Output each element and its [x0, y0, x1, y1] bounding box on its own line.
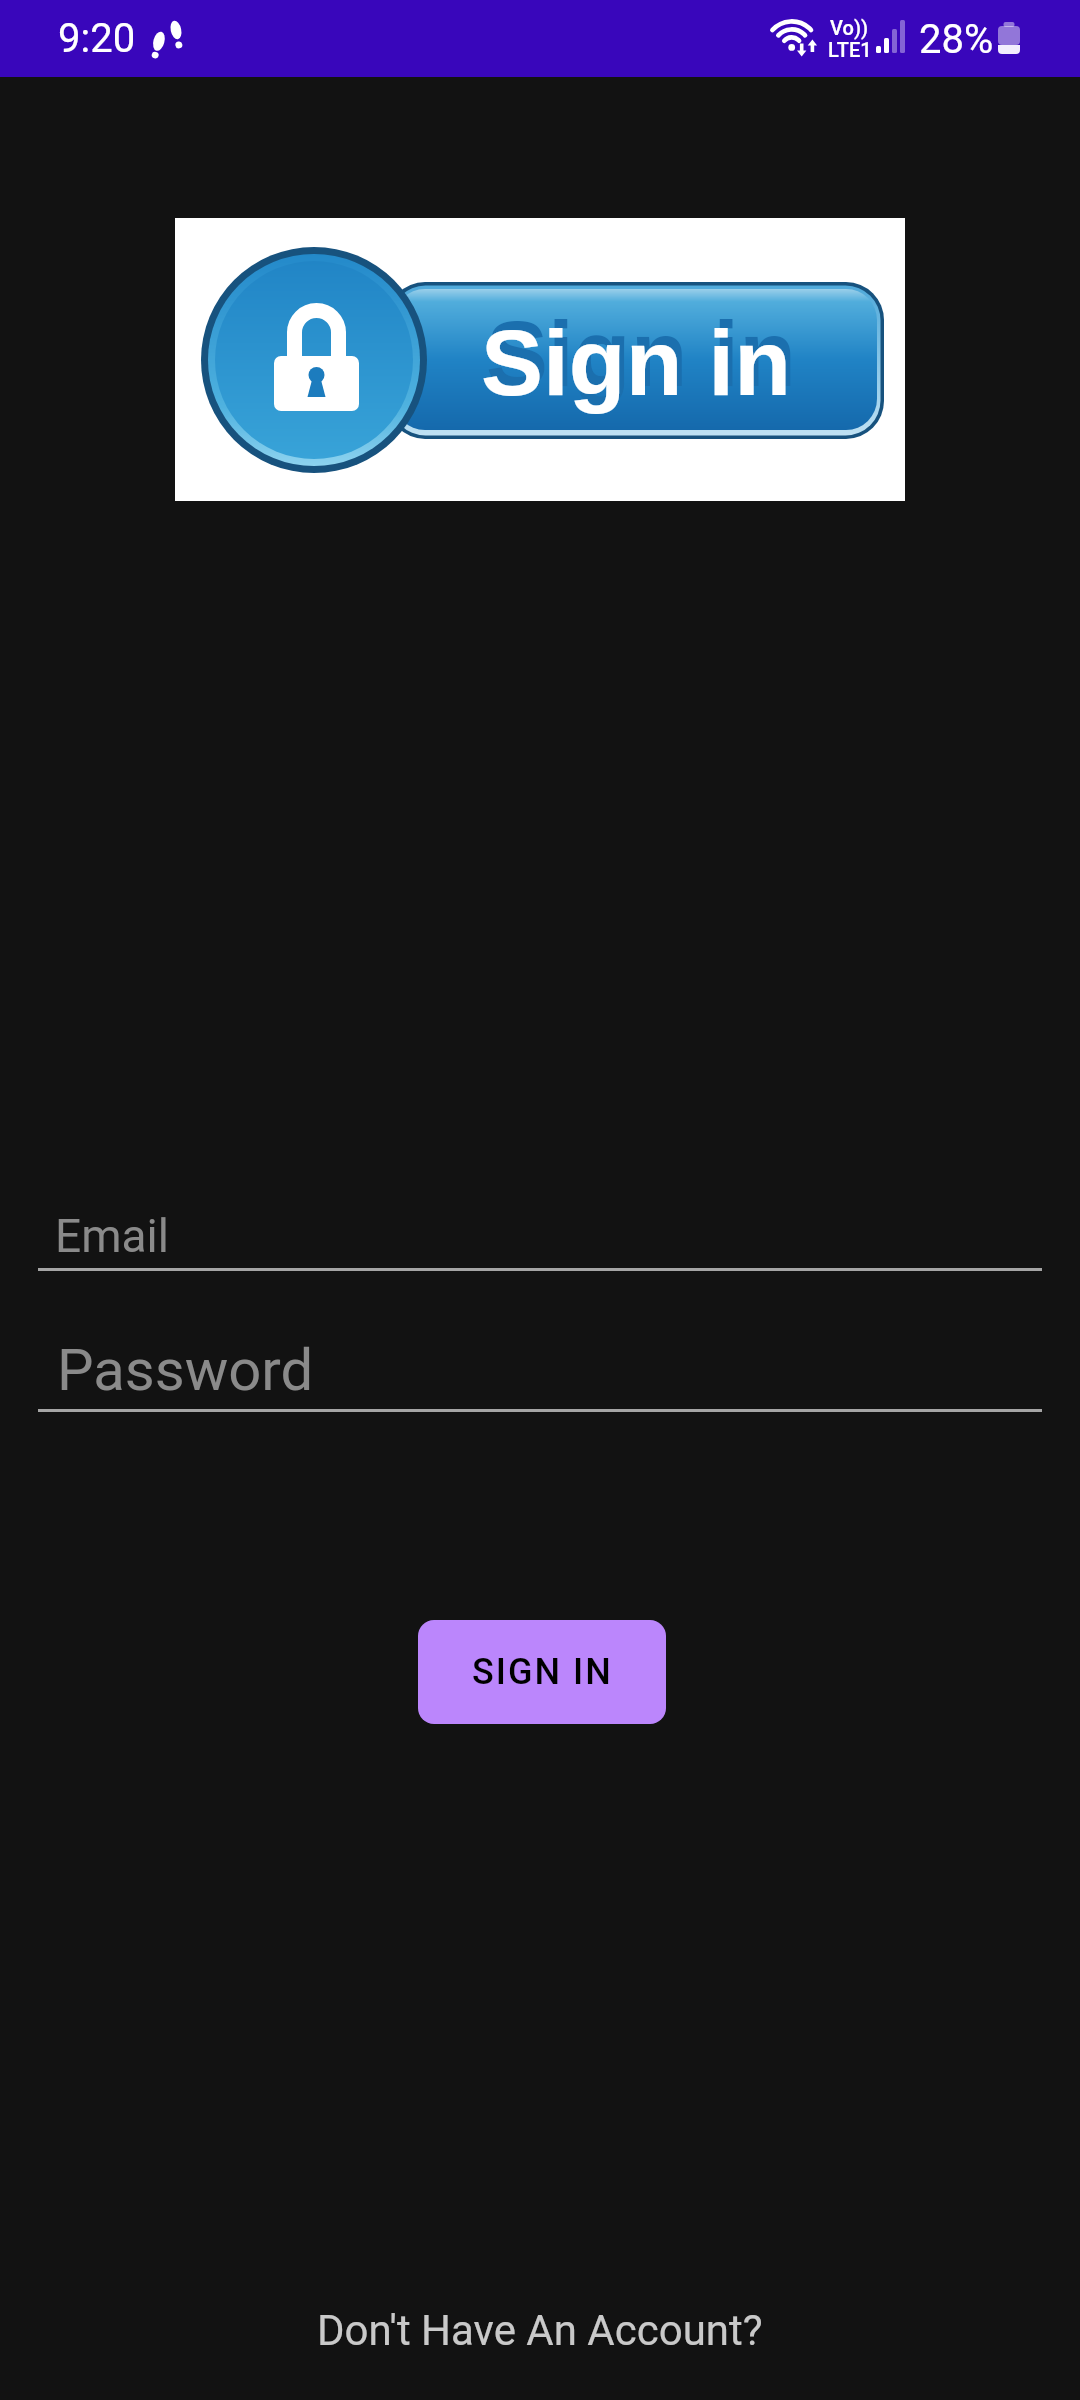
button[interactable]: SIGN IN	[418, 1620, 666, 1724]
staticText: 28%	[919, 16, 994, 63]
staticText: Sign in	[486, 302, 796, 406]
staticText: LTE1	[828, 38, 872, 61]
staticText: Password	[57, 1336, 314, 1404]
staticText: Email	[55, 1209, 169, 1263]
staticText: Don't Have An Account?	[317, 2306, 763, 2355]
button[interactable]: Don't Have An Account?	[0, 2293, 1080, 2367]
staticText: Sign in	[481, 311, 791, 415]
button[interactable]: Password	[38, 1315, 1042, 1412]
staticText: SIGN IN	[472, 1651, 613, 1693]
staticText: Vo))	[830, 16, 869, 39]
button[interactable]: Email	[38, 1190, 1042, 1271]
staticText: 9:20	[58, 15, 136, 62]
